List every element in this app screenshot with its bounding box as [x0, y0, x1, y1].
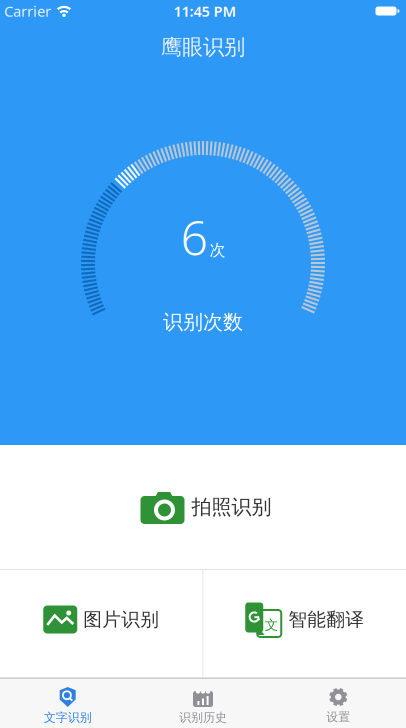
staticText: 文字识别 [44, 710, 92, 725]
button[interactable]: 拍照识别 [0, 445, 406, 569]
button[interactable]: 图片识别 [0, 570, 202, 677]
staticText: 6 [180, 205, 207, 269]
staticText: 识别历史 [179, 710, 227, 725]
button[interactable]: 设置 [271, 679, 406, 728]
staticText: 鹰眼识别 [161, 34, 245, 60]
button[interactable]: 识别历史 [135, 679, 271, 728]
staticText: 文 [265, 617, 278, 633]
staticText: Carrier [4, 1, 51, 21]
staticText: 11:45 PM [173, 1, 236, 21]
button[interactable]: 文 [203, 570, 406, 677]
staticText: 设置 [326, 709, 350, 724]
staticText: 次 [209, 240, 225, 260]
staticText: 智能翻译 [288, 608, 364, 631]
staticText: 拍照识别 [191, 495, 271, 519]
button[interactable]: 文字识别 [0, 679, 135, 728]
staticText: 识别次数 [163, 310, 243, 334]
staticText: 图片识别 [83, 608, 159, 631]
